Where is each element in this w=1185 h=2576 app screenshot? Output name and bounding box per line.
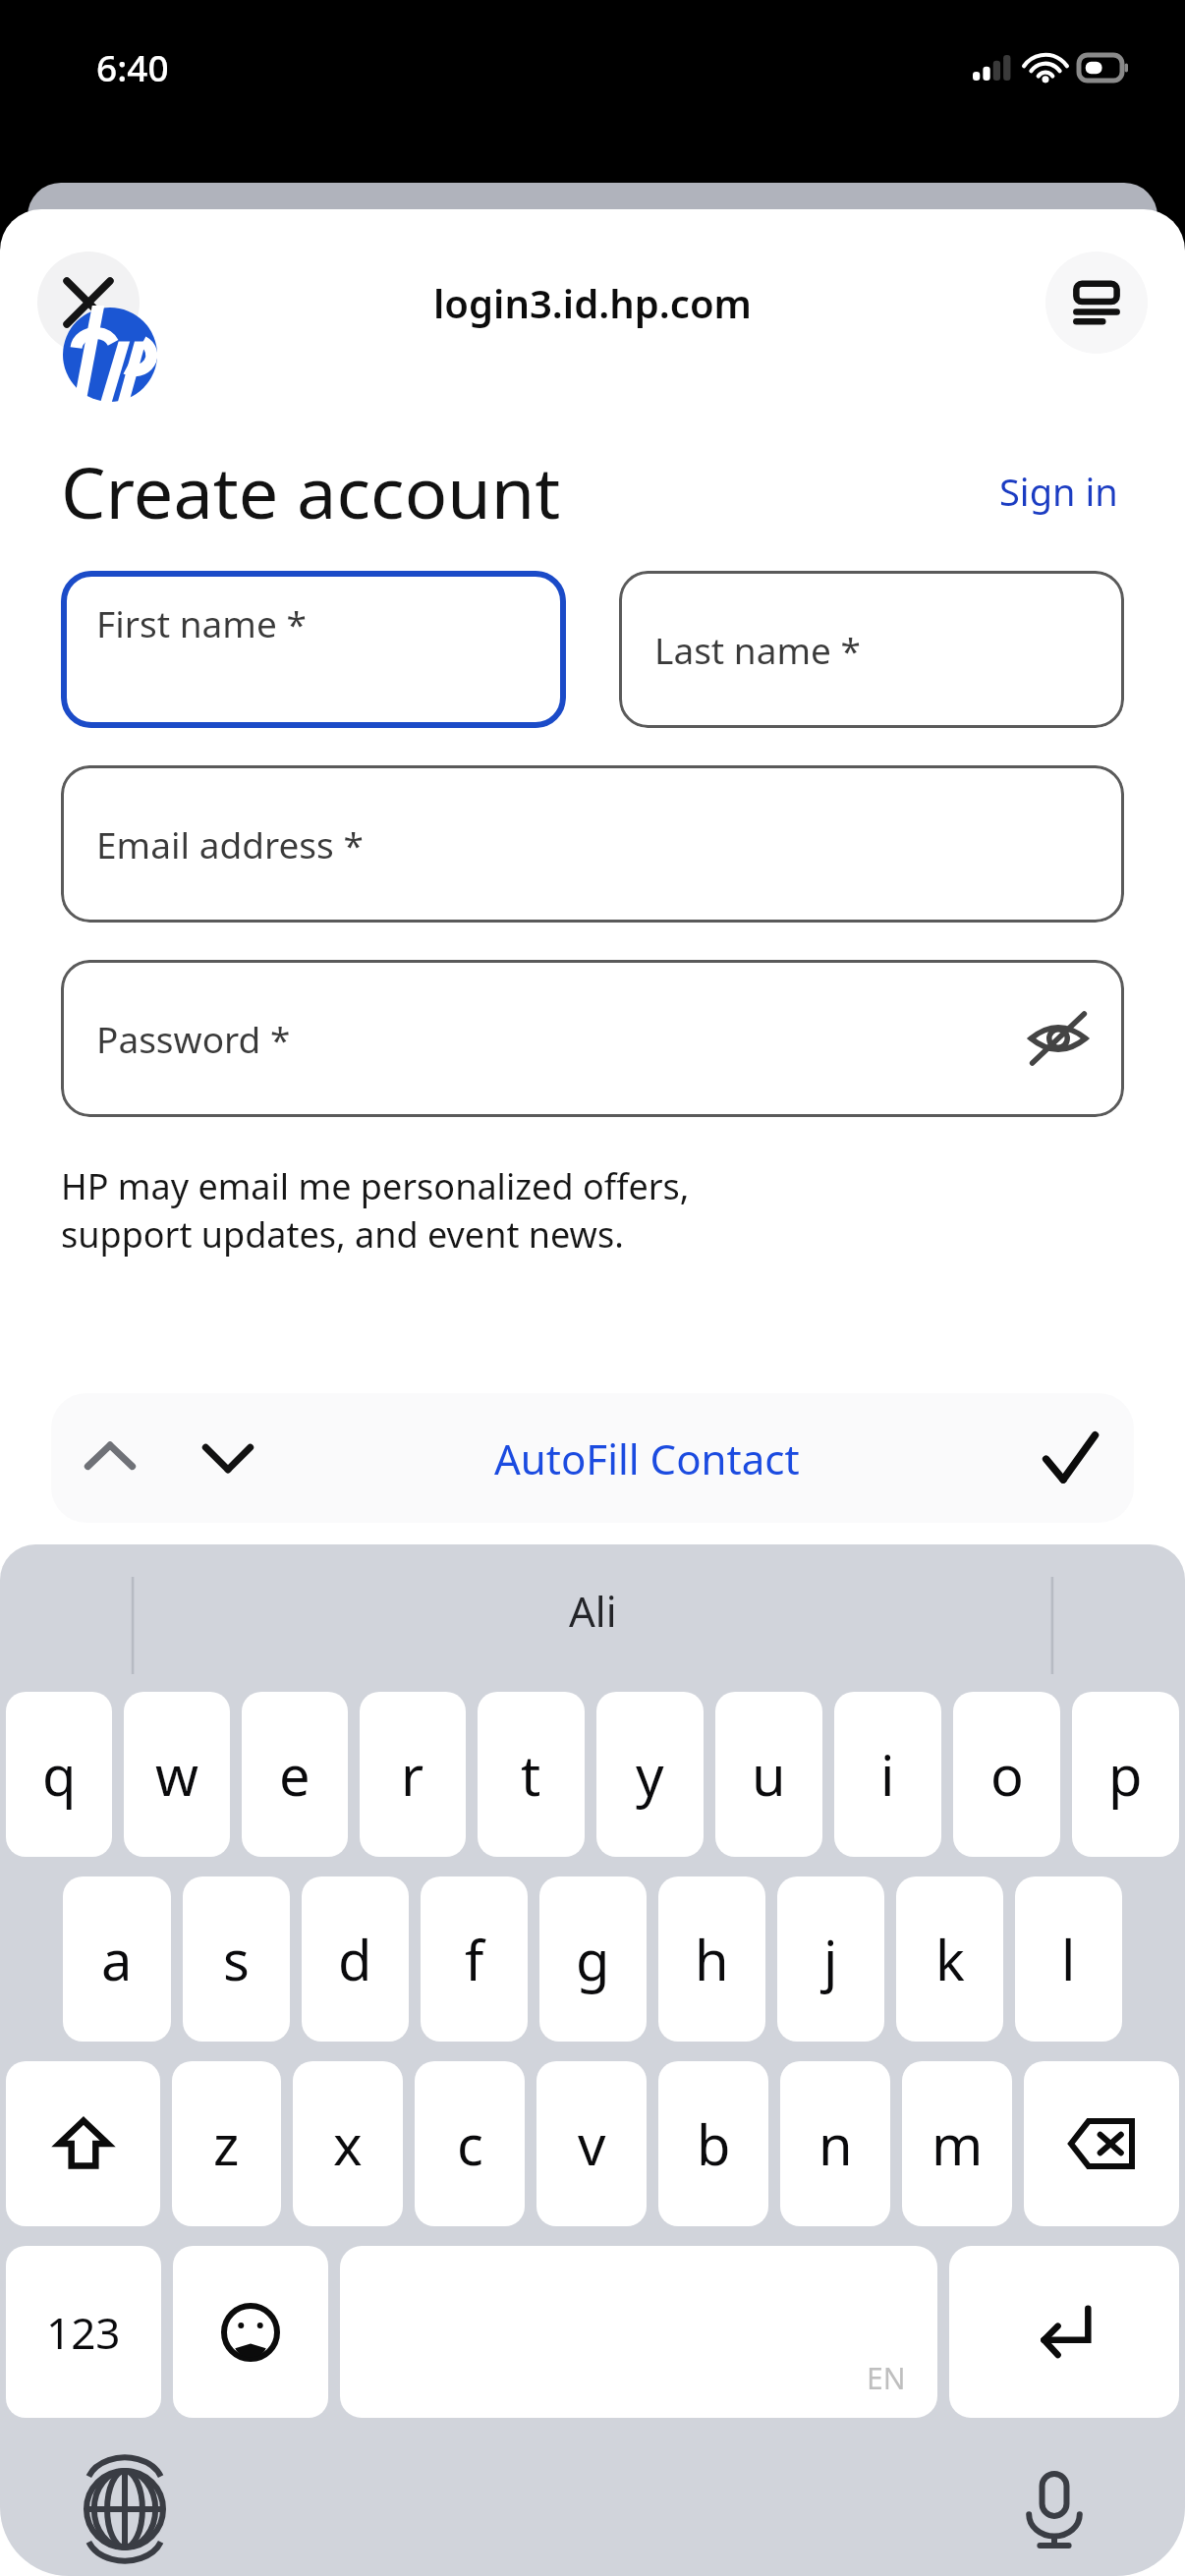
staticText: First name * <box>96 598 307 647</box>
button[interactable]: h <box>658 1876 765 2042</box>
staticText: Create account <box>61 443 561 539</box>
staticText: z <box>213 2106 240 2181</box>
staticText: r <box>401 1737 424 1812</box>
staticText: p <box>1108 1737 1143 1812</box>
button[interactable]: First name * <box>61 571 566 728</box>
button[interactable]: Backspace <box>1024 2061 1179 2226</box>
button[interactable]: p <box>1072 1692 1179 1857</box>
button[interactable]: o <box>953 1692 1060 1857</box>
button[interactable]: Previous field <box>51 1393 169 1523</box>
staticText: d <box>338 1922 372 1996</box>
staticText: AutoFill Contact <box>494 1430 800 1486</box>
staticText: a <box>101 1922 133 1996</box>
button[interactable]: Password * <box>61 960 1124 1117</box>
button[interactable]: n <box>780 2061 890 2226</box>
button[interactable]: t <box>478 1692 585 1857</box>
staticText: Ali <box>569 1583 617 1639</box>
button[interactable]: Reader view <box>1045 252 1148 354</box>
button[interactable]: q <box>6 1692 112 1857</box>
button[interactable]: m <box>902 2061 1012 2226</box>
staticText: h <box>695 1922 729 1996</box>
staticText: w <box>155 1737 199 1812</box>
button[interactable]: k <box>896 1876 1003 2042</box>
button[interactable]: z <box>172 2061 281 2226</box>
button[interactable]: Email address * <box>61 765 1124 923</box>
button[interactable]: 123 <box>6 2246 161 2418</box>
staticText: f <box>465 1922 484 1996</box>
staticText: t <box>521 1737 541 1812</box>
button[interactable]: Return <box>949 2246 1179 2418</box>
button[interactable]: Done <box>1006 1393 1134 1523</box>
staticText: j <box>823 1922 838 1996</box>
button[interactable]: Previous field <box>51 1393 1134 1523</box>
button[interactable]: r <box>360 1692 466 1857</box>
staticText: u <box>752 1737 786 1812</box>
button[interactable]: Next field <box>169 1393 287 1523</box>
button[interactable]: y <box>596 1692 704 1857</box>
button[interactable]: i <box>834 1692 941 1857</box>
button[interactable]: s <box>183 1876 290 2042</box>
staticText: Sign in <box>999 466 1118 517</box>
staticText: 6:40 <box>96 42 169 91</box>
button[interactable]: l <box>1015 1876 1122 2042</box>
button[interactable]: a <box>63 1876 171 2042</box>
staticText: m <box>931 2106 984 2181</box>
staticText: Password * <box>96 1014 291 1063</box>
button[interactable]: Shift <box>6 2061 160 2226</box>
button[interactable]: g <box>539 1876 647 2042</box>
staticText: n <box>818 2106 853 2181</box>
staticText: q <box>42 1737 77 1812</box>
button[interactable]: b <box>658 2061 768 2226</box>
staticText: y <box>636 1737 664 1812</box>
staticText: x <box>333 2106 363 2181</box>
staticText: 123 <box>46 2303 121 2362</box>
button[interactable]: Voice input <box>1012 2467 1097 2551</box>
button[interactable]: c <box>415 2061 525 2226</box>
staticText: Email address * <box>96 819 364 868</box>
button[interactable]: Space <box>340 2246 937 2418</box>
staticText: b <box>697 2106 731 2181</box>
button[interactable]: Change keyboard language <box>83 2467 167 2551</box>
staticText: Last name * <box>654 625 861 674</box>
staticText: e <box>279 1737 310 1812</box>
staticText: c <box>457 2106 483 2181</box>
button[interactable]: u <box>715 1692 822 1857</box>
staticText: o <box>990 1737 1024 1812</box>
button[interactable]: Sign in <box>993 460 1124 523</box>
button[interactable]: x <box>293 2061 403 2226</box>
button[interactable]: Close <box>37 252 140 354</box>
button[interactable]: v <box>536 2061 647 2226</box>
staticText: i <box>880 1737 895 1812</box>
staticText: s <box>223 1922 250 1996</box>
button[interactable]: Emoji <box>173 2246 328 2418</box>
staticText: HP may email me personalized offers, sup… <box>61 1162 1124 1259</box>
staticText: g <box>576 1922 610 1996</box>
button[interactable]: Show password <box>1026 1006 1091 1071</box>
button[interactable]: j <box>777 1876 884 2042</box>
staticText: l <box>1061 1922 1076 1996</box>
button[interactable]: w <box>124 1692 230 1857</box>
button[interactable]: f <box>421 1876 528 2042</box>
staticText: k <box>935 1922 965 1996</box>
button[interactable]: Last name * <box>619 571 1124 728</box>
staticText: v <box>578 2106 606 2181</box>
button[interactable]: d <box>302 1876 409 2042</box>
staticText: EN <box>867 2358 906 2398</box>
staticText: login3.id.hp.com <box>433 276 752 329</box>
button[interactable]: e <box>242 1692 348 1857</box>
